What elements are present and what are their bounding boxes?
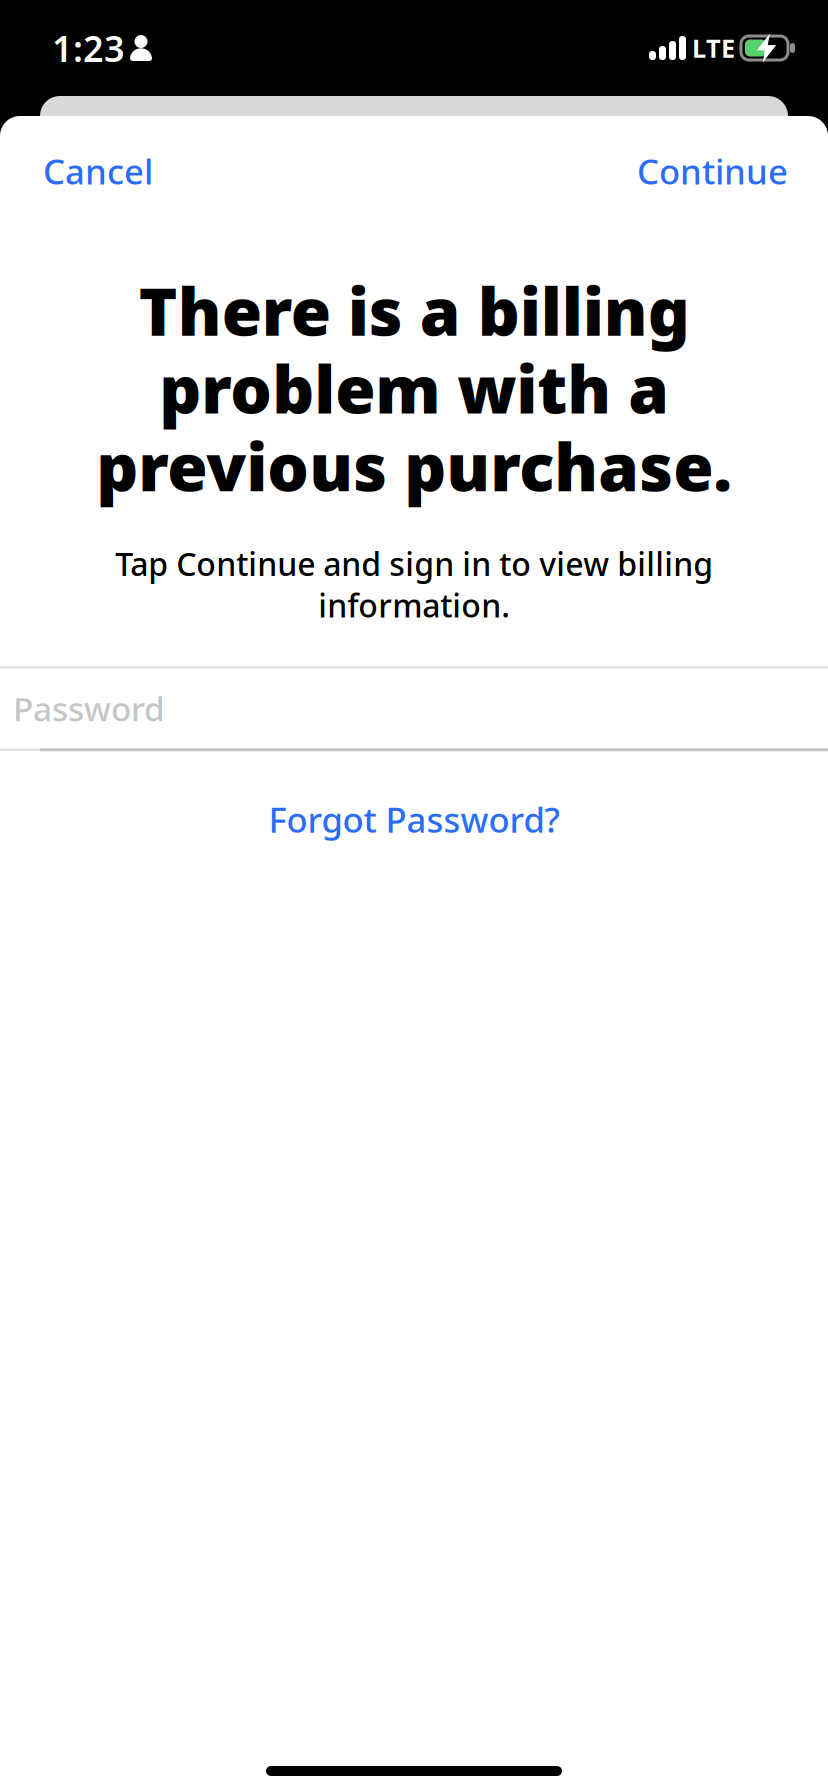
staticText: LTE <box>692 31 735 65</box>
staticText: Forgot Password? <box>268 796 559 842</box>
staticText: Cancel <box>43 148 153 194</box>
button[interactable]: Forgot Password? <box>0 784 828 854</box>
staticText: Continue <box>637 148 788 194</box>
staticText: Password <box>13 686 165 730</box>
secureTextField[interactable]: Password <box>0 668 828 748</box>
staticText: 1:23 <box>52 24 125 72</box>
staticText: There is a billing problem with a previo… <box>96 267 732 509</box>
staticText: Tap Continue and sign in to view billing… <box>115 542 713 626</box>
button[interactable]: Cancel <box>25 134 171 208</box>
button[interactable]: Continue <box>619 134 806 208</box>
